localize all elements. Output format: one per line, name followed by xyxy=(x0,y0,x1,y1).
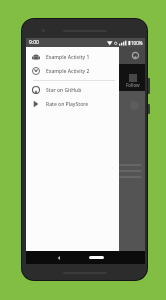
button[interactable]: Example Activity 2 xyxy=(26,64,119,78)
button[interactable]: Example Activity 1 xyxy=(26,50,119,64)
staticText: Follow xyxy=(126,82,140,88)
staticText: 100% xyxy=(131,40,143,46)
staticText: Star on GitHub xyxy=(46,87,82,94)
button[interactable]: Rate on PlayStore xyxy=(26,97,119,111)
staticText: Example Activity 2 xyxy=(46,68,90,75)
button[interactable]: Home xyxy=(89,256,104,259)
staticText: 9:00 xyxy=(29,39,39,46)
button[interactable]: Star on GitHub xyxy=(26,83,119,97)
staticText: Rate on PlayStore xyxy=(46,101,89,108)
button[interactable]: Back xyxy=(54,253,63,262)
staticText: Example Activity 1 xyxy=(46,54,90,61)
button[interactable]: Star on GitHub xyxy=(130,50,141,61)
